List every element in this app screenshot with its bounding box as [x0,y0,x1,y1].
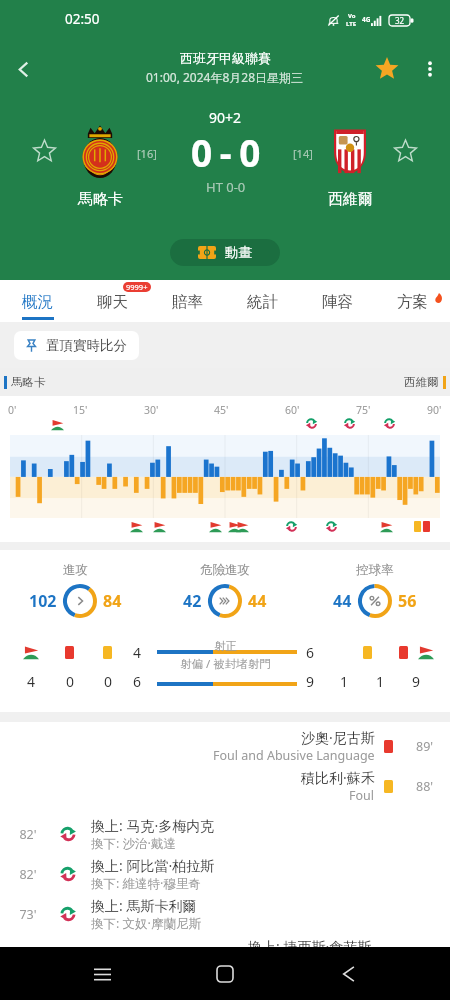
button[interactable]: 82' [0,854,450,894]
button[interactable]: 統計 [225,280,300,322]
staticText: 60' [285,403,300,417]
button[interactable]: 賠率 [150,280,225,322]
staticText: 44 [248,590,267,612]
button[interactable]: More options [410,49,450,89]
staticText: 4G [362,15,371,24]
staticText: 102 [29,590,57,612]
button[interactable]: 控球率 [300,562,450,618]
button[interactable]: 換上: 捷西斯·食菲斯 [0,934,450,974]
staticText: 換下: 文奴·摩蘭尼斯 [91,915,201,932]
staticText: 9 [306,672,315,691]
button[interactable]: 陣容 [300,280,375,322]
staticText: 陣容 [322,292,353,312]
staticText: 9 [412,672,421,691]
staticText: 56 [398,590,417,612]
staticText: 82' [14,866,42,883]
staticText: 0 [66,672,75,691]
button[interactable]: 89' [0,726,450,766]
staticText: 4 [133,643,142,662]
staticText: 沙奧·尼古斯 [301,728,375,747]
staticText: 西班牙甲級聯賽 [180,50,271,66]
button[interactable]: 概況 [0,280,75,322]
staticText: 88' [416,778,434,795]
staticText: 西維爾 [328,190,373,209]
staticText: [16] [137,146,157,161]
button[interactable]: 危險進攻 [150,562,300,618]
staticText: 換上: 阿比當·柏拉斯 [91,856,215,875]
staticText: 90+2 [209,108,242,127]
staticText: 0 [104,672,113,691]
staticText: 15' [73,403,88,417]
staticText: 4 [27,672,36,691]
staticText: 30' [144,403,159,417]
staticText: 9999+ [126,282,148,292]
button[interactable]: Back [327,952,371,996]
staticText: HT 0-0 [206,178,246,196]
button[interactable]: 73' [0,894,450,934]
staticText: 換下: 沙治·戴達 [91,835,176,852]
staticText: 6 [133,672,142,691]
staticText: 02:50 [65,10,100,28]
staticText: 89' [416,738,434,755]
staticText: 馬略卡 [11,375,46,389]
staticText: 90' [427,403,442,417]
staticText: 控球率 [356,562,394,578]
staticText: 換下: 維達特·穆里奇 [91,875,201,892]
staticText: 0' [8,403,17,417]
staticText: 45' [214,403,229,417]
staticText: 換上: 马克·多梅内克 [91,816,215,835]
staticText: 動畫 [225,244,252,261]
staticText: Vo [348,12,356,20]
staticText: LTE [346,20,357,28]
staticText: 危險進攻 [200,562,250,578]
staticText: 84 [103,590,122,612]
staticText: 換上: 馬斯卡利爾 [91,896,197,915]
button[interactable]: 進攻 [0,562,150,618]
staticText: 射正 [214,639,237,653]
staticText: 01:00, 2024年8月28日星期三 [146,69,304,85]
button[interactable]: Favourite [364,46,410,92]
staticText: 42 [183,590,202,612]
staticText: 西維爾 [404,375,439,389]
staticText: 聊天 [97,292,128,312]
staticText: 方案 [397,292,428,312]
staticText: 6 [306,643,315,662]
button[interactable]: 88' [0,766,450,806]
staticText: Foul [349,787,375,804]
staticText: 0 - 0 [191,127,260,177]
staticText: 射偏 / 被封堵射門 [180,656,271,672]
staticText: 置頂實時比分 [46,337,127,354]
staticText: 統計 [247,292,278,312]
staticText: 換上: 捷西斯·食菲斯 [248,937,372,956]
button[interactable]: 置頂實時比分 [14,331,139,360]
staticText: 賠率 [172,292,203,312]
staticText: 積比利·蘇禾 [301,768,375,787]
staticText: 1 [340,672,349,691]
staticText: 馬略卡 [78,190,123,209]
button[interactable]: 方案 [375,280,450,322]
staticText: 82' [14,826,42,843]
staticText: [14] [293,146,313,161]
staticText: 73' [14,906,42,923]
button[interactable]: Home [203,952,247,996]
staticText: 44 [333,590,352,612]
staticText: 32 [395,15,405,26]
staticText: 進攻 [63,562,88,578]
button[interactable]: Recent apps [80,952,124,996]
staticText: 概況 [22,292,53,312]
staticText: Foul and Abusive Language [213,747,375,764]
button[interactable]: 聊天 [75,280,150,322]
staticText: 75' [356,403,371,417]
button[interactable]: 82' [0,814,450,854]
button[interactable]: 動畫 [170,239,280,266]
staticText: 1 [376,672,385,691]
button[interactable]: Back [0,46,46,92]
